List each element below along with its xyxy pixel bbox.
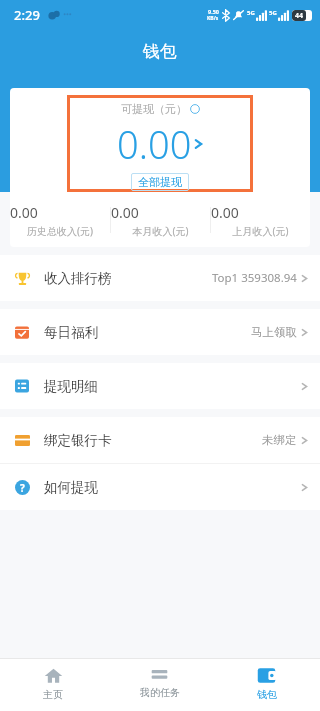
button[interactable]: 全部提现 (131, 173, 189, 191)
staticText: 5G (247, 9, 255, 17)
button[interactable]: 0.00 (211, 203, 310, 238)
staticText: 本月收入(元) (111, 224, 210, 238)
staticText: 我的任务 (140, 686, 180, 699)
staticText: 0.00 (111, 203, 210, 222)
other: 钱包 (257, 666, 276, 685)
button[interactable]: 0.00 (117, 118, 204, 170)
staticText: 提现明细 (44, 378, 98, 395)
button[interactable]: 每日福利 (0, 309, 320, 355)
staticText: 可提现（元） (121, 102, 187, 116)
staticText: 2:29 (14, 6, 40, 24)
button[interactable]: 收入排行榜 (0, 255, 320, 301)
button[interactable]: ? (0, 464, 320, 510)
button[interactable]: 0.00 (111, 203, 210, 238)
button[interactable]: 0.00 (10, 203, 110, 238)
staticText: 每日福利 (44, 324, 98, 341)
staticText: 上月收入(元) (211, 224, 310, 238)
other: 主页 (44, 666, 63, 685)
staticText: 钱包 (143, 41, 177, 62)
staticText: Top1 359308.94 (212, 270, 297, 286)
other: 我的任务 (151, 666, 168, 683)
button[interactable]: 钱包 (213, 659, 320, 711)
staticText: 收入排行榜 (44, 270, 112, 287)
staticText: ? (20, 481, 25, 495)
staticText: KB/s (207, 15, 219, 22)
staticText: 马上领取 (251, 325, 297, 339)
other: 帮助 (190, 104, 200, 114)
button[interactable]: 提现明细 (0, 363, 320, 409)
staticText: 主页 (43, 688, 63, 701)
staticText: 0.00 (211, 203, 310, 222)
button[interactable]: 绑定银行卡 (0, 417, 320, 463)
staticText: 绑定银行卡 (44, 432, 112, 449)
staticText: 钱包 (257, 688, 277, 701)
staticText: 0.00 (10, 203, 110, 222)
staticText: 历史总收入(元) (10, 224, 110, 238)
staticText: 0.00 (117, 118, 192, 170)
staticText: 9.50 (208, 8, 219, 15)
staticText: 5G (269, 9, 277, 17)
staticText: 全部提现 (138, 175, 182, 189)
staticText: 未绑定 (262, 433, 297, 447)
staticText: 44 (295, 11, 304, 21)
button[interactable]: 我的任务 (106, 659, 213, 711)
button[interactable]: 主页 (0, 659, 106, 711)
staticText: 如何提现 (44, 479, 98, 496)
